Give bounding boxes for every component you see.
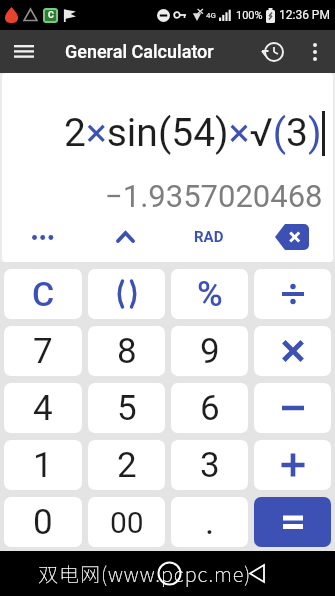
staticText: RAD [194,228,224,246]
staticText: 0 [33,502,53,543]
button[interactable]: 6 [171,383,248,433]
staticText: C [32,274,55,314]
button[interactable] [254,497,331,547]
staticText: 100% [236,9,263,22]
button[interactable]: RAD [167,216,250,258]
staticText: 9 [200,331,220,372]
button[interactable] [254,383,331,433]
staticText: 3 [200,445,220,486]
button[interactable]: 9 [171,326,248,376]
button[interactable]: C [4,269,82,319]
staticText: 2 [117,445,137,486]
button[interactable]: . [171,497,248,547]
staticText: 1 [33,445,53,486]
staticText: 4G [206,11,216,20]
button[interactable]: % [171,269,248,319]
button[interactable] [2,216,84,258]
button[interactable] [254,326,331,376]
button[interactable] [84,216,167,258]
button[interactable]: 5 [88,383,165,433]
button[interactable]: 8 [88,326,165,376]
staticText: 12:36 PM [279,8,330,22]
button[interactable] [295,30,335,73]
staticText: −1.9357020468 [105,178,323,208]
button[interactable]: 0 [4,497,82,547]
button[interactable] [0,30,48,73]
button[interactable]: 4 [4,383,82,433]
staticText: 00 [110,505,144,540]
button[interactable]: 1 [4,440,82,490]
staticText: C [48,10,54,21]
button[interactable]: 00 [88,497,165,547]
staticText: 2×sin(54)×√(3) [64,110,322,156]
staticText: 6 [200,388,220,429]
button[interactable]: 3 [171,440,248,490]
button[interactable] [88,269,165,319]
button[interactable] [250,216,333,258]
staticText: General Calculator [65,41,214,62]
button[interactable]: 7 [4,326,82,376]
staticText: . [205,502,215,543]
staticText: 4 [33,388,53,429]
staticText: 5 [117,388,137,429]
staticText: % [197,274,223,315]
staticText: 8 [117,331,137,372]
staticText: 7 [33,331,53,372]
staticText: 双电网(www.pcpc.me) [38,559,252,588]
button[interactable] [254,269,331,319]
button[interactable] [251,30,295,73]
button[interactable] [254,440,331,490]
button[interactable]: 2 [88,440,165,490]
